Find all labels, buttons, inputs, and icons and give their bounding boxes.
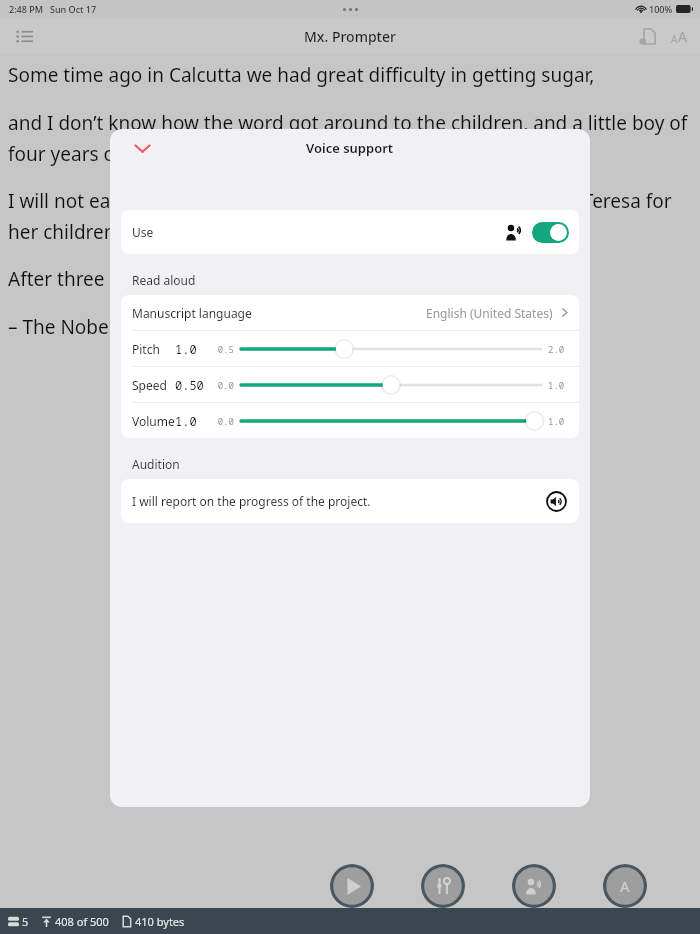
button[interactable]: Document info bbox=[633, 22, 661, 50]
staticText: and I don’t know how the word got around… bbox=[8, 110, 692, 166]
staticText: – The Nobel Lecture bbox=[8, 314, 186, 340]
staticText: 0.50 bbox=[175, 377, 212, 393]
button[interactable]: Play audition bbox=[544, 489, 568, 513]
staticText: Audition bbox=[132, 456, 180, 472]
staticText: 2:48 PM bbox=[9, 3, 43, 15]
staticText: 0.0 bbox=[212, 379, 234, 391]
staticText: Voice support bbox=[306, 139, 394, 157]
staticText: I will report on the progress of the pro… bbox=[132, 493, 371, 509]
staticText: After three days this little one came to… bbox=[8, 266, 449, 292]
staticText: A bbox=[620, 876, 630, 896]
staticText: A bbox=[678, 27, 687, 46]
staticText: 0.0 bbox=[212, 415, 234, 427]
staticText: 100% bbox=[649, 3, 673, 15]
button[interactable]: A bbox=[603, 864, 647, 908]
staticText: Manuscript language bbox=[132, 305, 252, 321]
staticText: Use bbox=[132, 224, 154, 240]
staticText: Speed bbox=[132, 377, 175, 393]
button[interactable] bbox=[240, 410, 542, 432]
staticText: I will not eat sugar for three days, I w… bbox=[8, 188, 692, 244]
staticText: 1.0 bbox=[548, 415, 568, 427]
staticText: English (United States) bbox=[426, 305, 553, 321]
button[interactable] bbox=[240, 338, 542, 360]
staticText: Mx. Prompter bbox=[304, 27, 396, 46]
button[interactable]: Text size bbox=[665, 22, 693, 50]
staticText: Pitch bbox=[132, 341, 175, 357]
staticText: Some time ago in Calcutta we had great d… bbox=[8, 62, 595, 88]
button[interactable]: Use bbox=[121, 210, 579, 254]
staticText: 1.0 bbox=[175, 413, 212, 429]
staticText: Sun Oct 17 bbox=[50, 3, 97, 15]
staticText: Read aloud bbox=[132, 272, 196, 288]
button[interactable]: Tools bbox=[421, 864, 465, 908]
button[interactable]: Dismiss bbox=[129, 135, 155, 161]
staticText: 408 of 500 bbox=[55, 914, 109, 929]
staticText: 2.0 bbox=[548, 343, 568, 355]
staticText: Volume bbox=[132, 413, 175, 429]
staticText: A bbox=[671, 32, 678, 46]
staticText: 5 bbox=[22, 914, 29, 929]
staticText: 1.0 bbox=[175, 341, 212, 357]
staticText: 1.0 bbox=[548, 379, 568, 391]
button[interactable]: Menu bbox=[9, 21, 39, 51]
button[interactable]: Manuscript language bbox=[121, 295, 579, 330]
button[interactable] bbox=[240, 374, 542, 396]
button[interactable]: Enable voice support bbox=[532, 222, 569, 243]
staticText: 0.5 bbox=[212, 343, 234, 355]
button[interactable]: Voice bbox=[512, 864, 556, 908]
button[interactable]: Play bbox=[330, 864, 374, 908]
button[interactable]: I will report on the progress of the pro… bbox=[121, 479, 579, 523]
staticText: 410 bytes bbox=[135, 914, 185, 929]
